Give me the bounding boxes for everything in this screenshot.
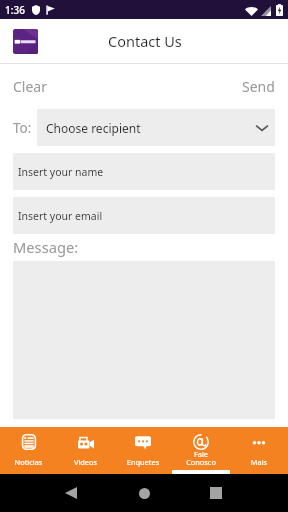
- staticText: 1:36: [5, 3, 25, 17]
- button[interactable]: Enquetes: [114, 427, 172, 474]
- button[interactable]: Send: [242, 77, 275, 96]
- button[interactable]: Insert your email: [13, 197, 275, 234]
- staticText: To:: [13, 119, 32, 137]
- staticText: Message:: [13, 237, 79, 257]
- staticText: Enquetes: [114, 457, 172, 467]
- staticText: Mais: [230, 457, 288, 467]
- other: Back: [65, 487, 77, 499]
- button[interactable]: Noticias: [0, 427, 57, 474]
- staticText: Insert your name: [18, 165, 104, 179]
- staticText: Insert your email: [18, 209, 103, 223]
- button[interactable]: Choose recipient: [37, 109, 275, 146]
- button[interactable]: CBN Airport logo: [13, 29, 38, 54]
- staticText: Fale Conosco: [172, 449, 230, 467]
- button[interactable]: Mais: [230, 427, 288, 474]
- button[interactable]: Fale Conosco: [172, 427, 230, 474]
- other: Home: [139, 488, 150, 499]
- button[interactable]: Insert your name: [13, 153, 275, 190]
- staticText: Clear: [13, 77, 47, 96]
- button[interactable]: Clear: [13, 77, 47, 96]
- staticText: Videos: [57, 457, 114, 467]
- staticText: Noticias: [0, 457, 57, 467]
- button[interactable]: Videos: [57, 427, 114, 474]
- staticText: Choose recipient: [46, 120, 141, 136]
- staticText: Contact Us: [108, 31, 182, 51]
- staticText: Send: [242, 77, 275, 96]
